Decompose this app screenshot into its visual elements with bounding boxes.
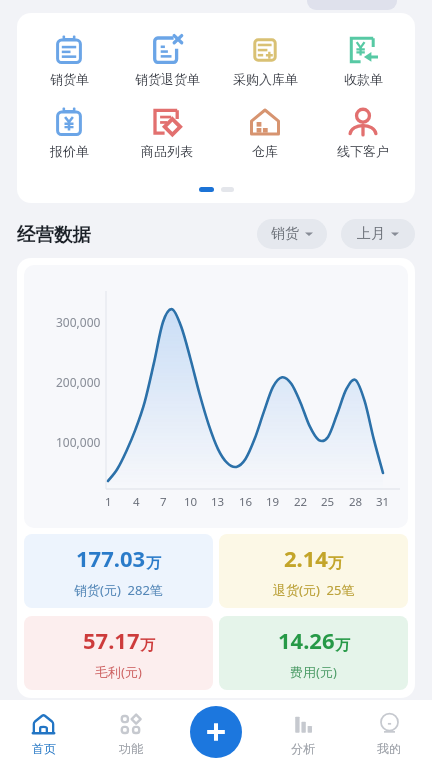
staticText: 31 — [376, 494, 390, 510]
staticText: 收款单 — [344, 71, 383, 87]
staticText: 退货(元) 25笔 — [273, 581, 355, 599]
staticText: 177.03 — [76, 543, 146, 573]
button[interactable]: 分析 — [260, 700, 346, 768]
staticText: 万 — [328, 554, 343, 573]
staticText: 线下客户 — [337, 143, 389, 159]
staticText: 25 — [321, 494, 335, 510]
staticText: 经营数据 — [17, 223, 91, 246]
staticText: 销货单 — [50, 71, 89, 87]
button[interactable]: 上月 — [341, 219, 415, 249]
staticText: 4 — [133, 494, 140, 510]
staticText: 14.26 — [278, 625, 335, 655]
staticText: 首页 — [32, 741, 56, 756]
staticText: 毛利(元) — [95, 663, 142, 681]
button[interactable]: 2.14 — [219, 534, 408, 608]
button[interactable]: 14.26 — [219, 616, 408, 690]
button[interactable]: 177.03 — [24, 534, 213, 608]
button[interactable]: 销货单 — [23, 35, 115, 87]
button[interactable]: 仓库 — [219, 107, 311, 159]
button[interactable]: 我的 — [346, 700, 432, 768]
button[interactable]: 商品列表 — [121, 107, 213, 159]
staticText: 13 — [211, 494, 225, 510]
staticText: 商品列表 — [141, 143, 193, 159]
button[interactable]: Add — [190, 706, 242, 758]
staticText: 功能 — [119, 741, 143, 756]
staticText: 上月 — [357, 225, 385, 243]
staticText: 万 — [335, 636, 350, 655]
staticText: 100,000 — [56, 434, 101, 450]
staticText: 22 — [294, 494, 308, 510]
staticText: 费用(元) — [290, 663, 337, 681]
staticText: 销货退货单 — [135, 71, 200, 87]
button[interactable]: 报价单 — [23, 107, 115, 159]
staticText: 我的 — [377, 741, 401, 756]
staticText: 16 — [239, 494, 253, 510]
staticText: 仓库 — [252, 143, 278, 159]
button[interactable]: 57.17 — [24, 616, 213, 690]
staticText: 采购入库单 — [233, 71, 298, 87]
staticText: 万 — [146, 554, 161, 573]
staticText: 万 — [140, 636, 155, 655]
button[interactable]: 采购入库单 — [219, 35, 311, 87]
staticText: 10 — [184, 494, 198, 510]
staticText: 19 — [266, 494, 280, 510]
staticText: 分析 — [291, 741, 315, 756]
staticText: 1 — [105, 494, 112, 510]
staticText: 报价单 — [50, 143, 89, 159]
button[interactable]: 线下客户 — [317, 107, 409, 159]
button[interactable]: 功能 — [87, 700, 174, 768]
staticText: 销货 — [271, 225, 299, 243]
staticText: 28 — [349, 494, 363, 510]
staticText: 7 — [160, 494, 167, 510]
staticText: 57.17 — [83, 625, 140, 655]
button[interactable]: 收款单 — [317, 35, 409, 87]
staticText: 300,000 — [56, 314, 101, 330]
button[interactable]: 首页 — [0, 700, 87, 768]
staticText: 销货(元) 282笔 — [74, 581, 163, 599]
button[interactable]: 销货 — [257, 219, 327, 249]
staticText: 2.14 — [284, 543, 328, 573]
button[interactable]: 销货退货单 — [121, 35, 213, 87]
staticText: 200,000 — [56, 374, 101, 390]
